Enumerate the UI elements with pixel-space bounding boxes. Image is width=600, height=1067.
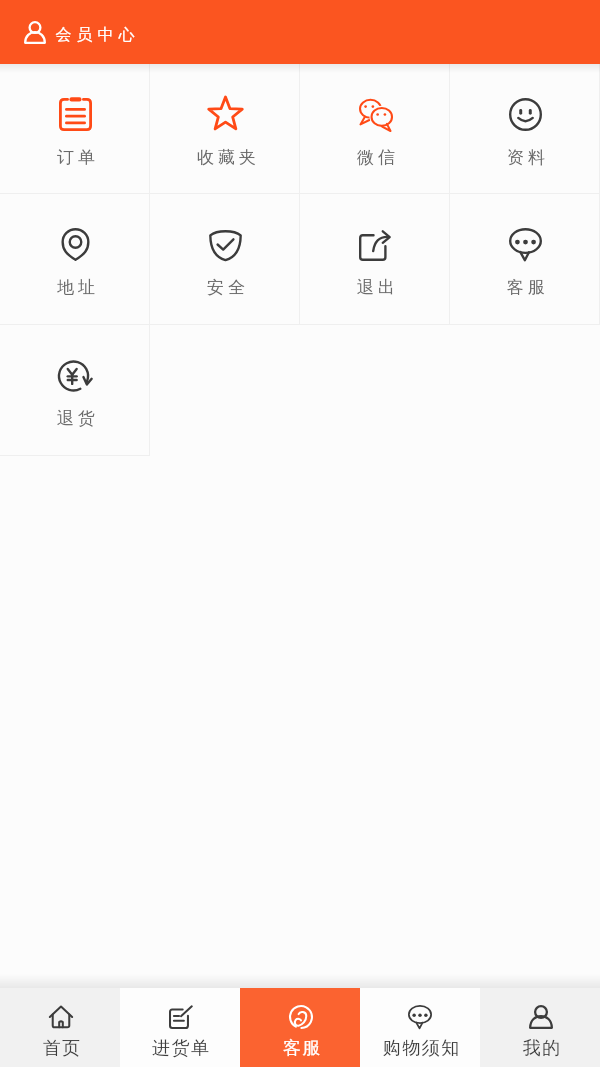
- button[interactable]: 购物须知: [360, 988, 480, 1067]
- button[interactable]: 我的: [480, 988, 600, 1067]
- staticText: 资料: [505, 147, 547, 168]
- staticText: 购物须知: [382, 1037, 460, 1060]
- other: Member profile: [24, 21, 46, 44]
- staticText: 首页: [42, 1037, 81, 1060]
- button[interactable]: 微信: [300, 64, 450, 194]
- staticText: 退出: [355, 277, 397, 298]
- staticText: 客服: [505, 277, 547, 298]
- staticText: 我的: [522, 1037, 561, 1060]
- button[interactable]: 安全: [150, 194, 300, 325]
- staticText: 订单: [55, 147, 97, 168]
- button[interactable]: 收藏夹: [150, 64, 300, 194]
- staticText: 进货单: [152, 1037, 211, 1060]
- button[interactable]: 地址: [0, 194, 150, 325]
- staticText: 收藏夹: [195, 147, 258, 168]
- button[interactable]: 进货单: [120, 988, 240, 1067]
- button[interactable]: 客服: [450, 194, 600, 325]
- staticText: 安全: [205, 277, 247, 298]
- button[interactable]: 退出: [300, 194, 450, 325]
- button[interactable]: 退货: [0, 325, 150, 456]
- staticText: 微信: [355, 147, 397, 168]
- staticText: 退货: [55, 408, 97, 429]
- button[interactable]: 首页: [0, 988, 120, 1067]
- staticText: 地址: [55, 277, 97, 298]
- button[interactable]: 订单: [0, 64, 150, 194]
- button[interactable]: 资料: [450, 64, 600, 194]
- button[interactable]: 客服: [240, 988, 360, 1067]
- staticText: 会员中心: [53, 25, 137, 45]
- staticText: 客服: [282, 1037, 321, 1060]
